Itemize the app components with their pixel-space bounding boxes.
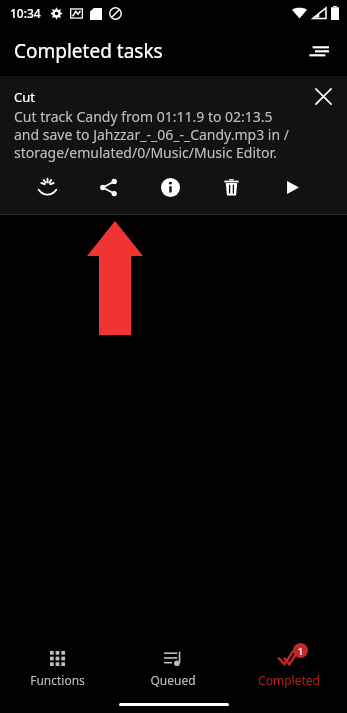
button[interactable]: Play <box>275 170 309 204</box>
staticText: 1 <box>298 645 304 657</box>
staticText: Queued <box>150 672 196 688</box>
button[interactable]: Delete <box>214 170 248 204</box>
staticText: Cut track Candy from 01:11.9 to 02:13.5 … <box>14 107 301 162</box>
button[interactable]: Queued <box>115 642 231 693</box>
button[interactable]: Dismiss <box>305 78 341 114</box>
staticText: Functions <box>30 672 85 688</box>
button[interactable]: Open again <box>30 170 64 204</box>
button[interactable]: 1 <box>231 642 347 693</box>
button[interactable]: Info <box>153 170 187 204</box>
staticText: 10:34 <box>10 5 41 21</box>
staticText: Completed tasks <box>14 38 163 64</box>
button[interactable]: Share <box>91 170 125 204</box>
staticText: Completed <box>258 672 320 688</box>
button[interactable]: Functions <box>0 642 115 693</box>
staticText: Cut <box>14 88 35 106</box>
button[interactable]: Sort <box>299 31 339 71</box>
